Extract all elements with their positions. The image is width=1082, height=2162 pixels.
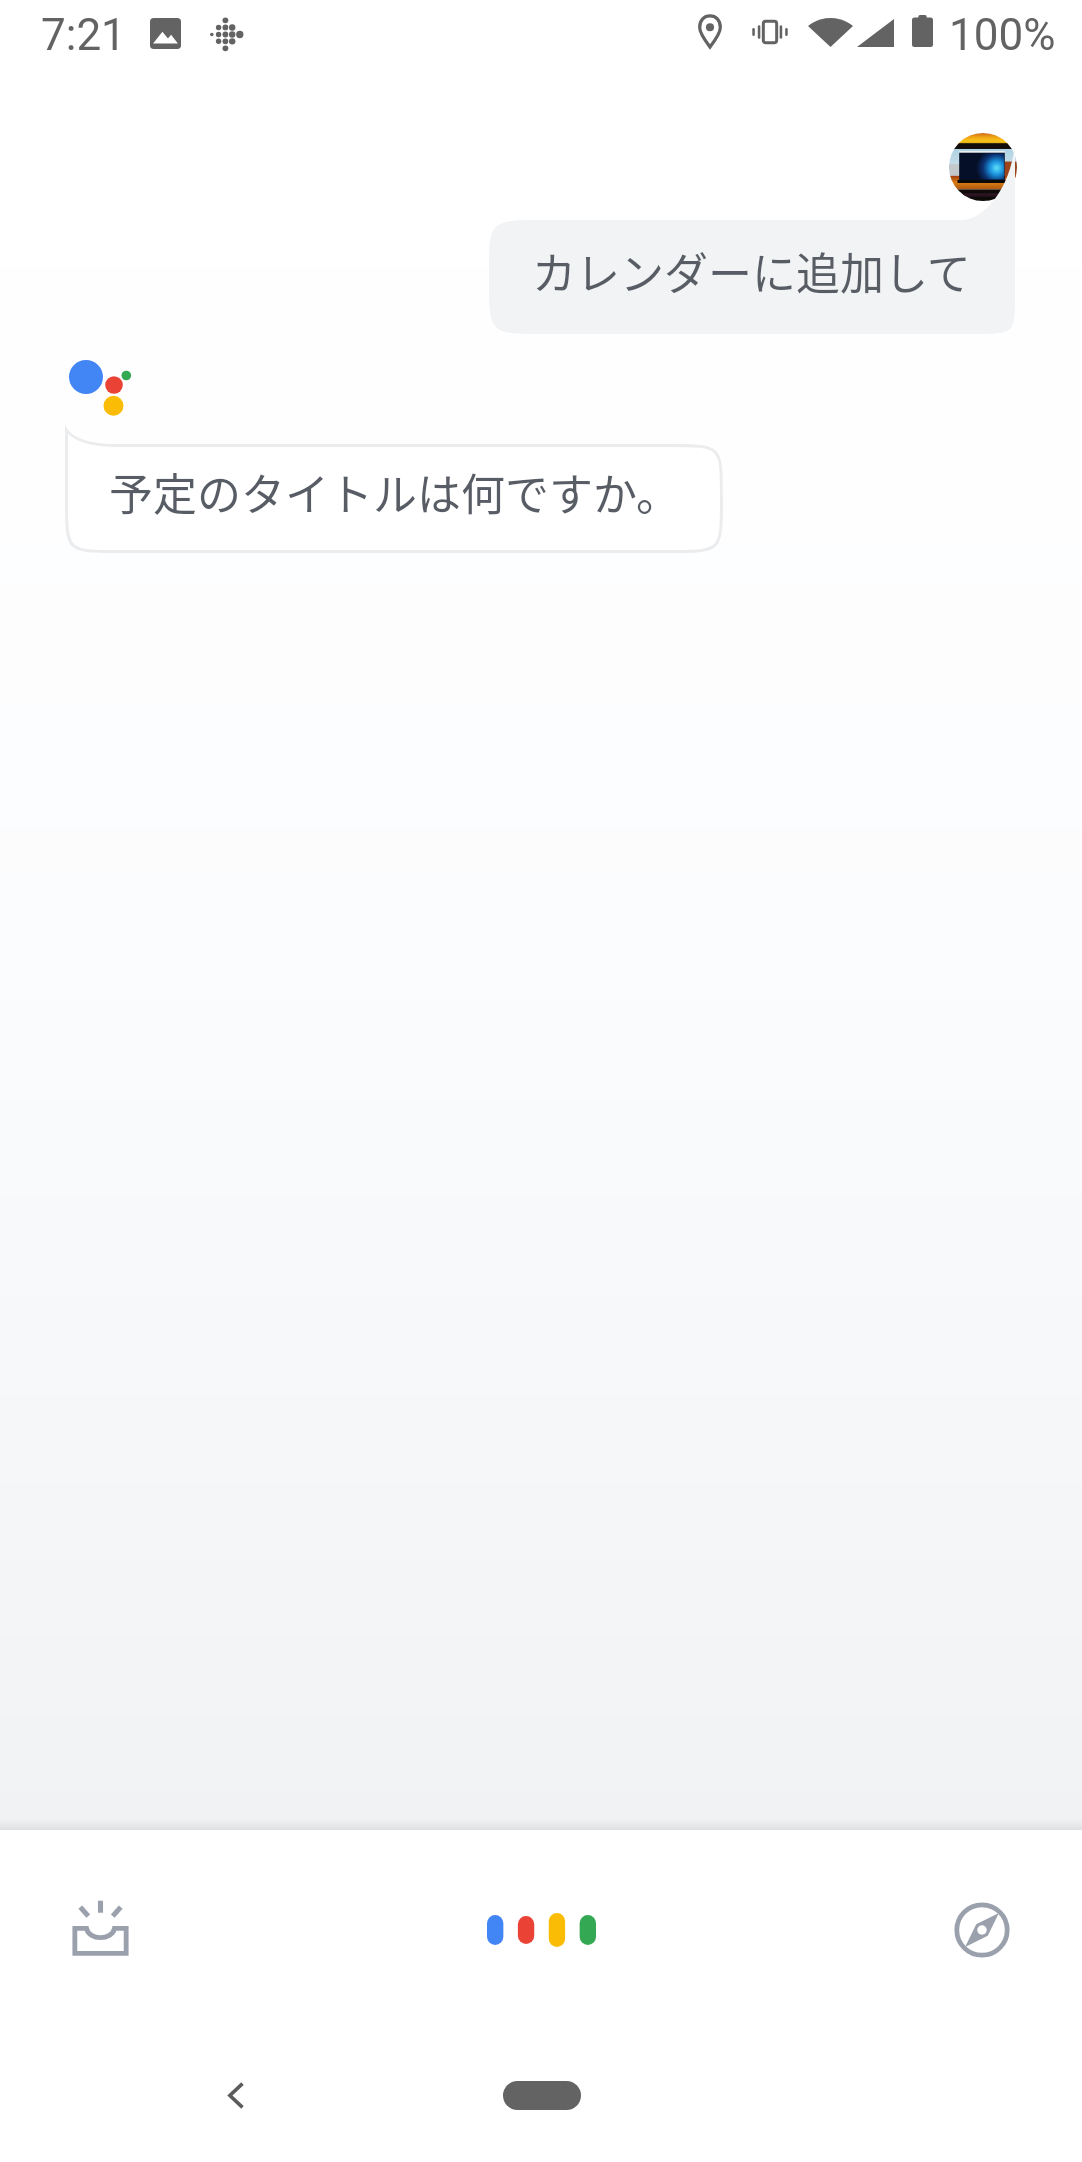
button[interactable]: 予定のタイトルは何ですか。 <box>65 419 723 554</box>
staticText: 予定のタイトルは何ですか。 <box>109 460 681 524</box>
staticText: 7:21 <box>41 9 126 61</box>
button[interactable]: Snapshot <box>42 1869 158 1985</box>
button[interactable]: Back <box>196 2055 276 2135</box>
button[interactable]: Talk to Google Assistant <box>483 1872 599 1988</box>
button[interactable]: Home <box>464 2055 620 2135</box>
staticText: 100% <box>949 9 1056 61</box>
button[interactable]: Explore <box>924 1872 1040 1988</box>
staticText: カレンダーに追加して <box>532 239 971 303</box>
button[interactable]: カレンダーに追加して <box>489 126 1015 335</box>
button[interactable]: Google Account <box>949 133 1017 201</box>
